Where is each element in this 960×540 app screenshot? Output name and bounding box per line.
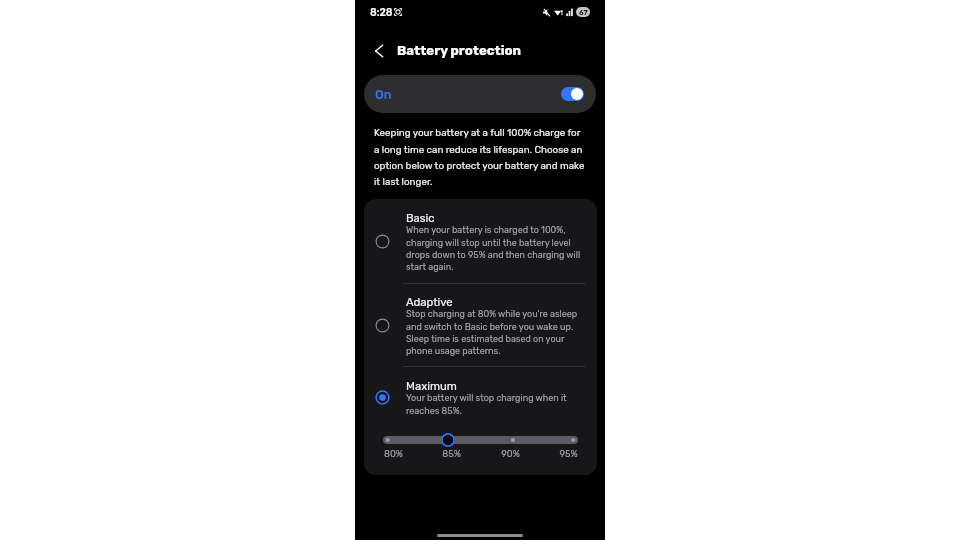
- staticText: 67: [579, 8, 588, 17]
- staticText: Basic: [406, 211, 435, 224]
- button[interactable]: Back: [368, 40, 390, 62]
- staticText: On: [375, 87, 392, 102]
- staticText: Keeping your battery at a full 100% char…: [374, 127, 586, 187]
- staticText: Adaptive: [406, 295, 453, 308]
- staticText: 8:28: [370, 6, 393, 18]
- staticText: 95%: [559, 448, 578, 459]
- staticText: Battery protection: [397, 43, 521, 59]
- staticText: 90%: [501, 448, 520, 459]
- staticText: When your battery is charged to 100%, ch…: [406, 225, 586, 272]
- staticText: 85%: [442, 448, 461, 459]
- staticText: Your battery will stop charging when it …: [406, 393, 586, 416]
- button[interactable]: On: [364, 75, 596, 113]
- staticText: Maximum: [406, 379, 457, 392]
- button[interactable]: Maximum: [364, 367, 597, 427]
- staticText: Stop charging at 80% while you're asleep…: [406, 309, 586, 356]
- staticText: 80%: [384, 448, 403, 459]
- other: Screen recorder: [394, 8, 402, 16]
- button[interactable]: Adaptive: [364, 284, 597, 366]
- button[interactable]: Charging limit slider: [383, 433, 578, 447]
- other: Mobile signal: [566, 8, 573, 17]
- other: Wi-Fi: [554, 8, 563, 17]
- other: Sound off: [543, 8, 550, 17]
- button[interactable]: Basic: [364, 199, 597, 283]
